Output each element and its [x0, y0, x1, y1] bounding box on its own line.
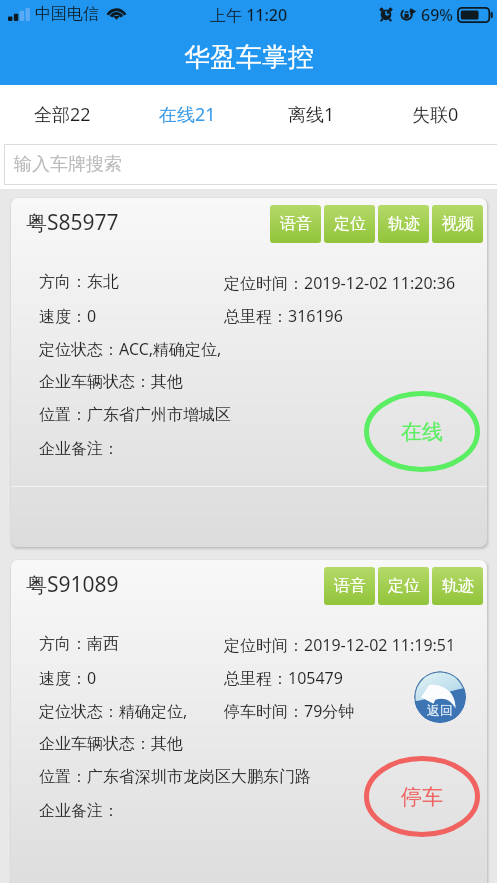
staticText: 轨迹 — [442, 576, 474, 596]
staticText: 输入车牌搜索 — [14, 153, 122, 176]
staticText: 位置：广东省广州市增城区 — [39, 405, 231, 425]
staticText: 视频 — [442, 214, 474, 234]
button[interactable]: 语音 — [324, 567, 375, 605]
staticText: 企业车辆状态：其他 — [39, 372, 183, 392]
staticText: 定位时间：2019-12-02 11:19:51 — [224, 634, 456, 656]
staticText: 总里程：316196 — [224, 305, 343, 327]
staticText: 返回 — [427, 702, 453, 718]
button[interactable]: 轨迹 — [432, 567, 483, 605]
button[interactable]: 失联0 — [373, 85, 497, 144]
staticText: 语音 — [334, 576, 366, 596]
button[interactable]: 视频 — [432, 205, 483, 243]
staticText: 总里程：105479 — [224, 667, 343, 689]
staticText: 失联0 — [412, 102, 459, 127]
staticText: 定位 — [388, 576, 420, 596]
staticText: 华盈车掌控 — [184, 41, 314, 74]
staticText: 企业备注： — [39, 801, 119, 821]
staticText: 粤S91089 — [26, 570, 119, 599]
staticText: 在线21 — [159, 102, 216, 127]
staticText: 离线1 — [288, 102, 335, 127]
staticText: 位置：广东省深圳市龙岗区大鹏东门路 — [39, 767, 311, 787]
staticText: 定位 — [334, 214, 366, 234]
staticText: 上午 11:20 — [210, 4, 288, 26]
staticText: 方向：南西 — [39, 634, 119, 654]
staticText: 轨迹 — [388, 214, 420, 234]
staticText: 停车 — [401, 784, 443, 810]
button[interactable]: 轨迹 — [378, 205, 429, 243]
staticText: 速度：0 — [39, 305, 97, 327]
staticText: 全部22 — [34, 102, 91, 127]
button[interactable]: 定位 — [378, 567, 429, 605]
button[interactable]: 输入车牌搜索 — [4, 144, 497, 185]
staticText: 企业车辆状态：其他 — [39, 734, 183, 754]
staticText: 定位时间：2019-12-02 11:20:36 — [224, 272, 456, 294]
staticText: 粤S85977 — [26, 208, 119, 237]
staticText: 速度：0 — [39, 667, 97, 689]
staticText: 在线 — [401, 419, 443, 445]
button[interactable]: 返回 — [414, 671, 466, 723]
button[interactable]: 语音 — [270, 205, 321, 243]
staticText: 中国电信 — [35, 4, 99, 24]
button[interactable]: 定位 — [324, 205, 375, 243]
button[interactable]: 粤S85977 — [11, 198, 487, 547]
button[interactable]: 离线1 — [249, 85, 373, 144]
staticText: 企业备注： — [39, 439, 119, 459]
staticText: 停车时间：79分钟 — [224, 700, 355, 722]
button[interactable]: 在线21 — [125, 85, 249, 144]
staticText: 定位状态：ACC,精确定位, — [39, 338, 222, 360]
button[interactable]: 全部22 — [0, 85, 125, 144]
staticText: 定位状态：精确定位, — [39, 700, 188, 722]
button[interactable]: 粤S91089 — [11, 560, 487, 883]
staticText: 语音 — [280, 214, 312, 234]
staticText: 69% — [421, 4, 453, 26]
staticText: 方向：东北 — [39, 272, 119, 292]
